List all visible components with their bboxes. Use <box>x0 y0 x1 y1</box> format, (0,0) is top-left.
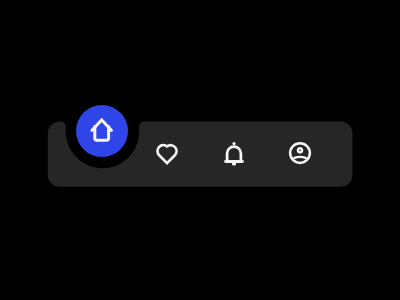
button[interactable]: Favorites <box>143 130 191 178</box>
button[interactable]: Home <box>76 105 128 157</box>
button[interactable]: Profile <box>276 129 324 177</box>
button[interactable]: Notifications <box>210 130 258 178</box>
